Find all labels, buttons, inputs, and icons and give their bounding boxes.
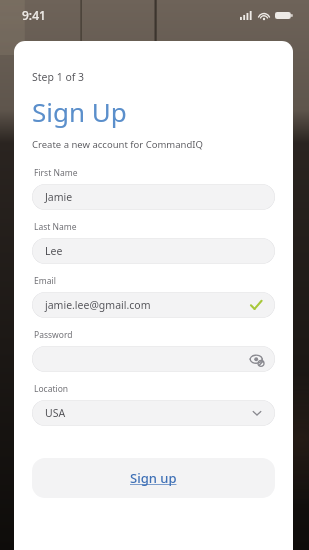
staticText: 9:41 — [22, 7, 46, 23]
staticText: Lee — [45, 244, 63, 258]
staticText: Sign Up — [32, 94, 127, 129]
button[interactable]: Show password — [249, 352, 264, 367]
button[interactable]: USA — [32, 400, 275, 426]
staticText: Create a new account for CommandIQ — [32, 138, 203, 151]
staticText: Email — [34, 275, 56, 287]
staticText: Password — [34, 329, 73, 341]
button[interactable]: jamie.lee@gmail.com — [32, 292, 275, 318]
button[interactable]: Lee — [32, 238, 275, 264]
button[interactable]: Open location list — [251, 407, 263, 419]
staticText: First Name — [34, 167, 78, 179]
button[interactable]: Jamie — [32, 184, 275, 210]
other: Valid email — [249, 298, 263, 312]
staticText: Jamie — [45, 190, 73, 204]
button[interactable]: Show password — [32, 346, 275, 372]
staticText: Location — [34, 383, 69, 395]
staticText: jamie.lee@gmail.com — [45, 298, 151, 312]
staticText: Last Name — [34, 221, 77, 233]
staticText: Sign up — [130, 469, 177, 487]
staticText: Step 1 of 3 — [32, 70, 85, 84]
staticText: USA — [45, 406, 66, 420]
button[interactable]: Sign up — [32, 458, 275, 498]
